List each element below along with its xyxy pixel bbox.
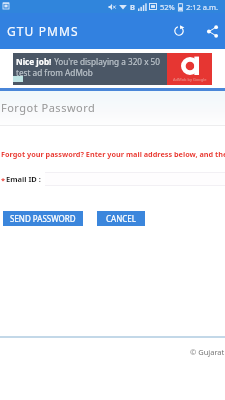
staticText: Nice job! (16, 56, 52, 67)
button[interactable]: Nice job! (13, 53, 212, 85)
staticText: Forgot Password (1, 100, 96, 115)
staticText: * (1, 175, 6, 185)
staticText: You're displaying a 320 x 50 (52, 56, 160, 67)
staticText: Forgot your password? Enter your mail ad… (1, 149, 225, 159)
staticText: AdMob by Google (173, 77, 207, 82)
button[interactable]: SEND PASSWORD (3, 211, 83, 226)
staticText: B (130, 2, 135, 12)
staticText: test ad from AdMob (16, 67, 93, 78)
staticText: 52% (160, 2, 175, 12)
staticText: CANCEL (106, 213, 136, 224)
staticText: Email ID : (6, 174, 41, 184)
staticText: SEND PASSWORD (10, 213, 76, 224)
staticText: GTU PMMS (7, 23, 79, 39)
button[interactable] (45, 172, 225, 186)
button[interactable]: CANCEL (97, 211, 145, 226)
button[interactable]: Refresh (167, 19, 191, 43)
staticText: 2:12 a.m. (186, 2, 219, 12)
staticText: © Gujarat (190, 347, 225, 357)
button[interactable]: Share (200, 19, 224, 43)
